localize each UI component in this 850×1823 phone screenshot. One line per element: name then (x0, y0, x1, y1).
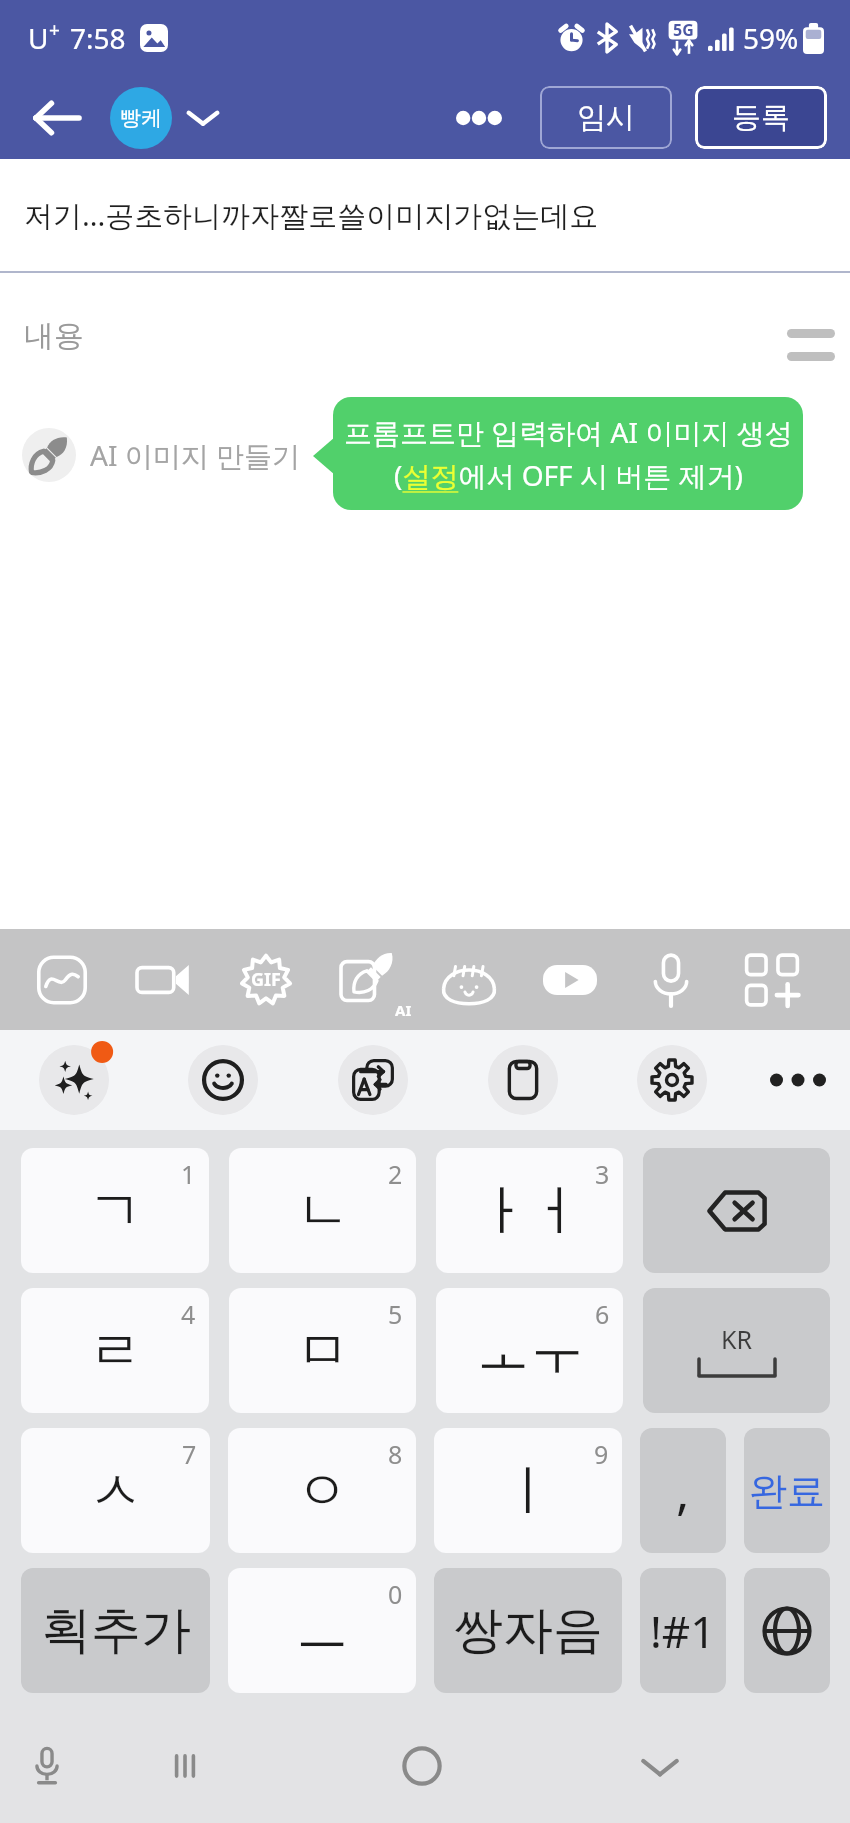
staticText: 빵케 (120, 105, 162, 131)
staticText: 3 (595, 1157, 610, 1191)
button[interactable]: ㅏㅓ (436, 1148, 623, 1273)
staticText: + (49, 17, 60, 43)
staticText: 6 (595, 1297, 610, 1331)
button[interactable]: Hide keyboard (612, 1718, 708, 1814)
button[interactable]: More options (437, 86, 521, 150)
staticText: 저기...공초하니까자짤로쓸이미지가없는데요 (24, 195, 599, 235)
button[interactable]: Voice input (0, 1718, 95, 1814)
button[interactable]: , (640, 1428, 726, 1553)
button[interactable]: 임시 (540, 86, 672, 149)
staticText: !#1 (650, 1601, 716, 1661)
button[interactable]: 획추가 (21, 1568, 210, 1693)
staticText: 임시 (577, 99, 635, 136)
staticText: 5 (388, 1297, 403, 1331)
button[interactable]: Recent apps (137, 1718, 233, 1814)
staticText: ㄹ (88, 1317, 142, 1385)
staticText: 7 (182, 1437, 197, 1471)
staticText: 1 (181, 1157, 196, 1191)
button[interactable]: 완료 (744, 1428, 830, 1553)
button[interactable]: AI 이미지 만들기 (22, 428, 300, 482)
staticText: AI (395, 1000, 412, 1020)
staticText: KR (721, 1322, 753, 1356)
staticText: 등록 (732, 99, 790, 136)
staticText: 획추가 (41, 1599, 191, 1662)
staticText: ㅏㅓ (476, 1177, 584, 1245)
staticText: ㄴ (296, 1177, 350, 1245)
staticText: U (28, 19, 49, 57)
button[interactable]: ㅁ (229, 1288, 416, 1413)
staticText: 내용 (24, 317, 84, 355)
button[interactable]: ㅡ (228, 1568, 416, 1693)
button[interactable]: KR (643, 1288, 830, 1413)
button[interactable]: ㄴ (229, 1148, 416, 1273)
button[interactable]: Emoji (173, 1030, 273, 1130)
button[interactable]: Back (22, 83, 92, 153)
button[interactable]: 등록 (695, 86, 827, 149)
button[interactable]: Voice (620, 929, 721, 1030)
button[interactable] (643, 1148, 830, 1273)
button[interactable]: ㄹ (21, 1288, 209, 1413)
button[interactable]: ㅇ (228, 1428, 416, 1553)
button[interactable]: YouTube (519, 929, 620, 1030)
button[interactable]: Video (113, 929, 215, 1030)
staticText: 프롬프트만 입력하여 AI 이미지 생성 (344, 413, 793, 451)
staticText: 완료 (749, 1467, 825, 1515)
button[interactable]: Sticker (418, 929, 519, 1030)
button[interactable]: More apps (721, 929, 822, 1030)
staticText: ㅡ (295, 1597, 349, 1665)
staticText: AI 이미지 만들기 (90, 436, 300, 474)
button[interactable]: Keyboard settings (622, 1030, 722, 1130)
button[interactable]: Photo (11, 929, 113, 1030)
staticText: 0 (388, 1577, 403, 1611)
button[interactable]: 쌍자음 (434, 1568, 622, 1693)
staticText: , (676, 1457, 690, 1525)
button[interactable]: 프롬프트만 입력하여 AI 이미지 생성 (333, 397, 803, 510)
button[interactable]: 빵케 (106, 87, 224, 149)
button[interactable]: ㄱ (21, 1148, 209, 1273)
staticText: 2 (388, 1157, 403, 1191)
button[interactable]: Home (374, 1718, 470, 1814)
staticText: ㅁ (296, 1317, 350, 1385)
button[interactable]: Clipboard (473, 1030, 573, 1130)
staticText: ㄱ (88, 1177, 142, 1245)
button[interactable]: ㅅ (21, 1428, 210, 1553)
staticText: 9 (594, 1437, 609, 1471)
staticText: ㅗㅜ (476, 1317, 584, 1385)
button[interactable]: Translate (323, 1030, 423, 1130)
staticText: GIF (251, 967, 281, 992)
button[interactable]: AI drawing (317, 929, 418, 1030)
button[interactable]: ㅗㅜ (436, 1288, 623, 1413)
staticText: 5G (673, 19, 694, 41)
staticText: 8 (388, 1437, 403, 1471)
staticText: ㅣ (501, 1457, 555, 1525)
staticText: 7:58 (70, 19, 126, 57)
button[interactable]: GIF (215, 929, 317, 1030)
button[interactable]: ㅣ (434, 1428, 622, 1553)
staticText: 59% (743, 19, 799, 57)
button[interactable]: AI suggestions (24, 1030, 124, 1130)
button[interactable]: More (748, 1030, 848, 1130)
staticText: ㅅ (89, 1457, 143, 1525)
staticText: (설정에서 OFF 시 버튼 제거) (394, 456, 743, 494)
button[interactable]: !#1 (640, 1568, 726, 1693)
staticText: ㅇ (295, 1457, 349, 1525)
staticText: 4 (181, 1297, 196, 1331)
button[interactable] (744, 1568, 830, 1693)
staticText: 쌍자음 (453, 1599, 603, 1662)
